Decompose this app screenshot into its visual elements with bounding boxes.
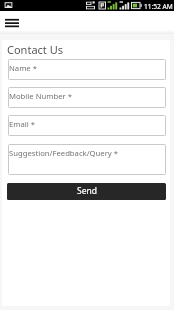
staticText: Email * [9,119,35,129]
staticText: Suggestion/Feedback/Query * [9,148,118,158]
button[interactable]: Name * [8,59,166,80]
staticText: Contact Us [7,42,63,57]
button[interactable]: Email * [8,115,166,136]
button[interactable]: Mobile Number * [8,87,166,108]
button[interactable]: Suggestion/Feedback/Query * [8,144,166,175]
staticText: Mobile Number * [9,91,72,101]
staticText: Name * [9,63,37,73]
button[interactable]: Send [7,183,166,200]
button[interactable]: Open navigation menu [5,12,19,28]
staticText: 11:52 AM [144,2,173,11]
staticText: Send [77,185,97,197]
